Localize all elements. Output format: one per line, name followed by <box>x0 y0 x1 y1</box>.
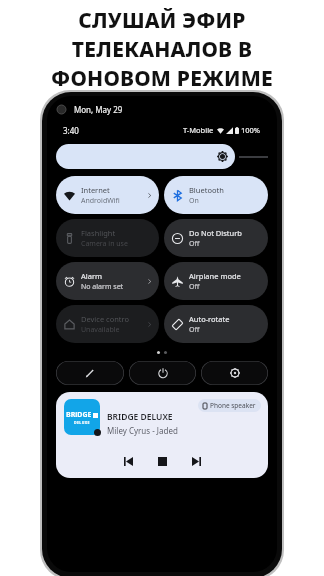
staticText: Do Not Disturb <box>189 228 242 238</box>
staticText: DELUXE <box>74 420 90 425</box>
button[interactable]: Previous <box>120 453 136 469</box>
staticText: Off <box>189 282 200 292</box>
button[interactable]: Stop <box>154 453 170 469</box>
staticText: Unavailable <box>81 325 120 335</box>
staticText: Camera in use <box>81 239 128 249</box>
staticText: ФОНОВОМ РЕЖИМЕ <box>0 64 324 93</box>
button[interactable]: Power <box>129 361 196 385</box>
staticText: Internet <box>81 185 110 195</box>
button[interactable]: Settings <box>201 361 268 385</box>
staticText: Phone speaker <box>210 401 256 410</box>
button[interactable]: BRiDGE <box>56 392 268 478</box>
staticText: Flashlight <box>81 228 116 238</box>
staticText: Alarm <box>81 271 103 281</box>
staticText: ТЕЛЕКАНАЛОВ В <box>0 35 324 64</box>
button[interactable]: Phone speaker <box>198 399 261 412</box>
staticText: Auto-rotate <box>189 314 230 324</box>
button[interactable]: Brightness <box>56 144 235 169</box>
button[interactable]: Airplane mode <box>164 262 268 300</box>
staticText: 100% <box>241 125 261 135</box>
button[interactable]: Internet <box>56 176 159 214</box>
staticText: СЛУШАЙ ЭФИР <box>0 6 324 35</box>
staticText: AndroidWifi <box>81 196 120 206</box>
staticText: Bluetooth <box>189 185 224 195</box>
button[interactable]: Next <box>188 453 204 469</box>
staticText: Off <box>189 239 200 249</box>
staticText: BRIDGE DELUXE <box>107 411 173 423</box>
button[interactable]: Flashlight <box>56 219 159 257</box>
button[interactable]: Bluetooth <box>164 176 268 214</box>
button[interactable]: Edit <box>56 361 124 385</box>
staticText: On <box>189 196 199 206</box>
staticText: Mon, May 29 <box>74 104 123 115</box>
button[interactable]: Device contro <box>56 305 159 343</box>
staticText: Device contro <box>81 314 130 324</box>
button[interactable]: Do Not Disturb <box>164 219 268 257</box>
staticText: T-Mobile <box>183 125 214 135</box>
staticText: Off <box>189 325 200 335</box>
staticText: Airplane mode <box>189 271 241 281</box>
button[interactable]: Alarm <box>56 262 159 300</box>
staticText: No alarm set <box>81 282 124 292</box>
staticText: 3:40 <box>63 125 79 136</box>
staticText: BRiDGE <box>66 410 92 420</box>
button[interactable]: Auto-rotate <box>164 305 268 343</box>
staticText: Miley Cyrus - Jaded <box>107 425 178 436</box>
